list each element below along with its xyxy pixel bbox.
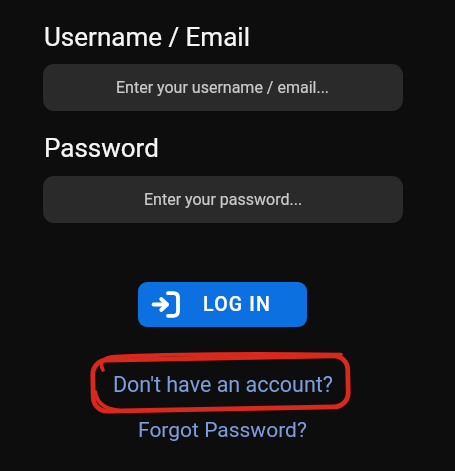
button[interactable]: Don't have an account? bbox=[100, 364, 345, 404]
button[interactable]: Forgot Password? bbox=[125, 413, 320, 447]
staticText: Enter your username / email... bbox=[116, 78, 330, 97]
staticText: Enter your password... bbox=[144, 190, 303, 209]
button[interactable]: Enter your username / email... bbox=[43, 64, 403, 111]
staticText: LOG IN bbox=[203, 293, 272, 316]
button[interactable]: Enter your password... bbox=[43, 176, 403, 223]
staticText: Forgot Password? bbox=[138, 418, 307, 443]
staticText: Don't have an account? bbox=[113, 372, 333, 397]
staticText: Username / Email bbox=[44, 22, 250, 52]
button[interactable]: LOG IN bbox=[138, 282, 307, 327]
staticText: Password bbox=[44, 133, 159, 163]
